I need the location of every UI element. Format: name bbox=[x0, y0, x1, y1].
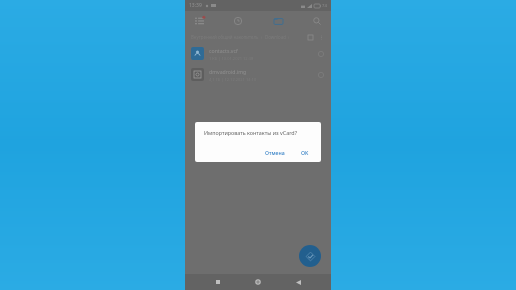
button[interactable]: Recents bbox=[211, 275, 225, 289]
button[interactable]: Back bbox=[291, 275, 305, 289]
button[interactable]: Categories bbox=[192, 14, 206, 28]
button[interactable]: Select file bbox=[316, 49, 325, 58]
button[interactable]: Confirm selection bbox=[299, 245, 321, 267]
button[interactable]: Select file bbox=[316, 70, 325, 79]
button[interactable]: OK bbox=[297, 147, 313, 158]
button[interactable]: Search bbox=[310, 14, 324, 28]
button[interactable]: Recent bbox=[231, 14, 245, 28]
staticText: dmvadroid.img bbox=[209, 68, 247, 75]
button[interactable]: Folders bbox=[271, 14, 285, 28]
button[interactable]: contacts.vcf bbox=[185, 43, 331, 64]
staticText: Импортировать контакты из vCard? bbox=[204, 129, 298, 136]
staticText: 74 bbox=[322, 3, 327, 9]
button[interactable]: Grid view bbox=[306, 33, 314, 41]
button[interactable]: Home bbox=[251, 275, 265, 289]
button[interactable]: Отмена bbox=[261, 147, 289, 158]
staticText: OK bbox=[301, 149, 309, 156]
staticText: contacts.vcf bbox=[209, 47, 238, 54]
button[interactable]: dmvadroid.img bbox=[185, 64, 331, 85]
staticText: Отмена bbox=[265, 149, 285, 156]
staticText: 13:39 bbox=[189, 2, 202, 9]
